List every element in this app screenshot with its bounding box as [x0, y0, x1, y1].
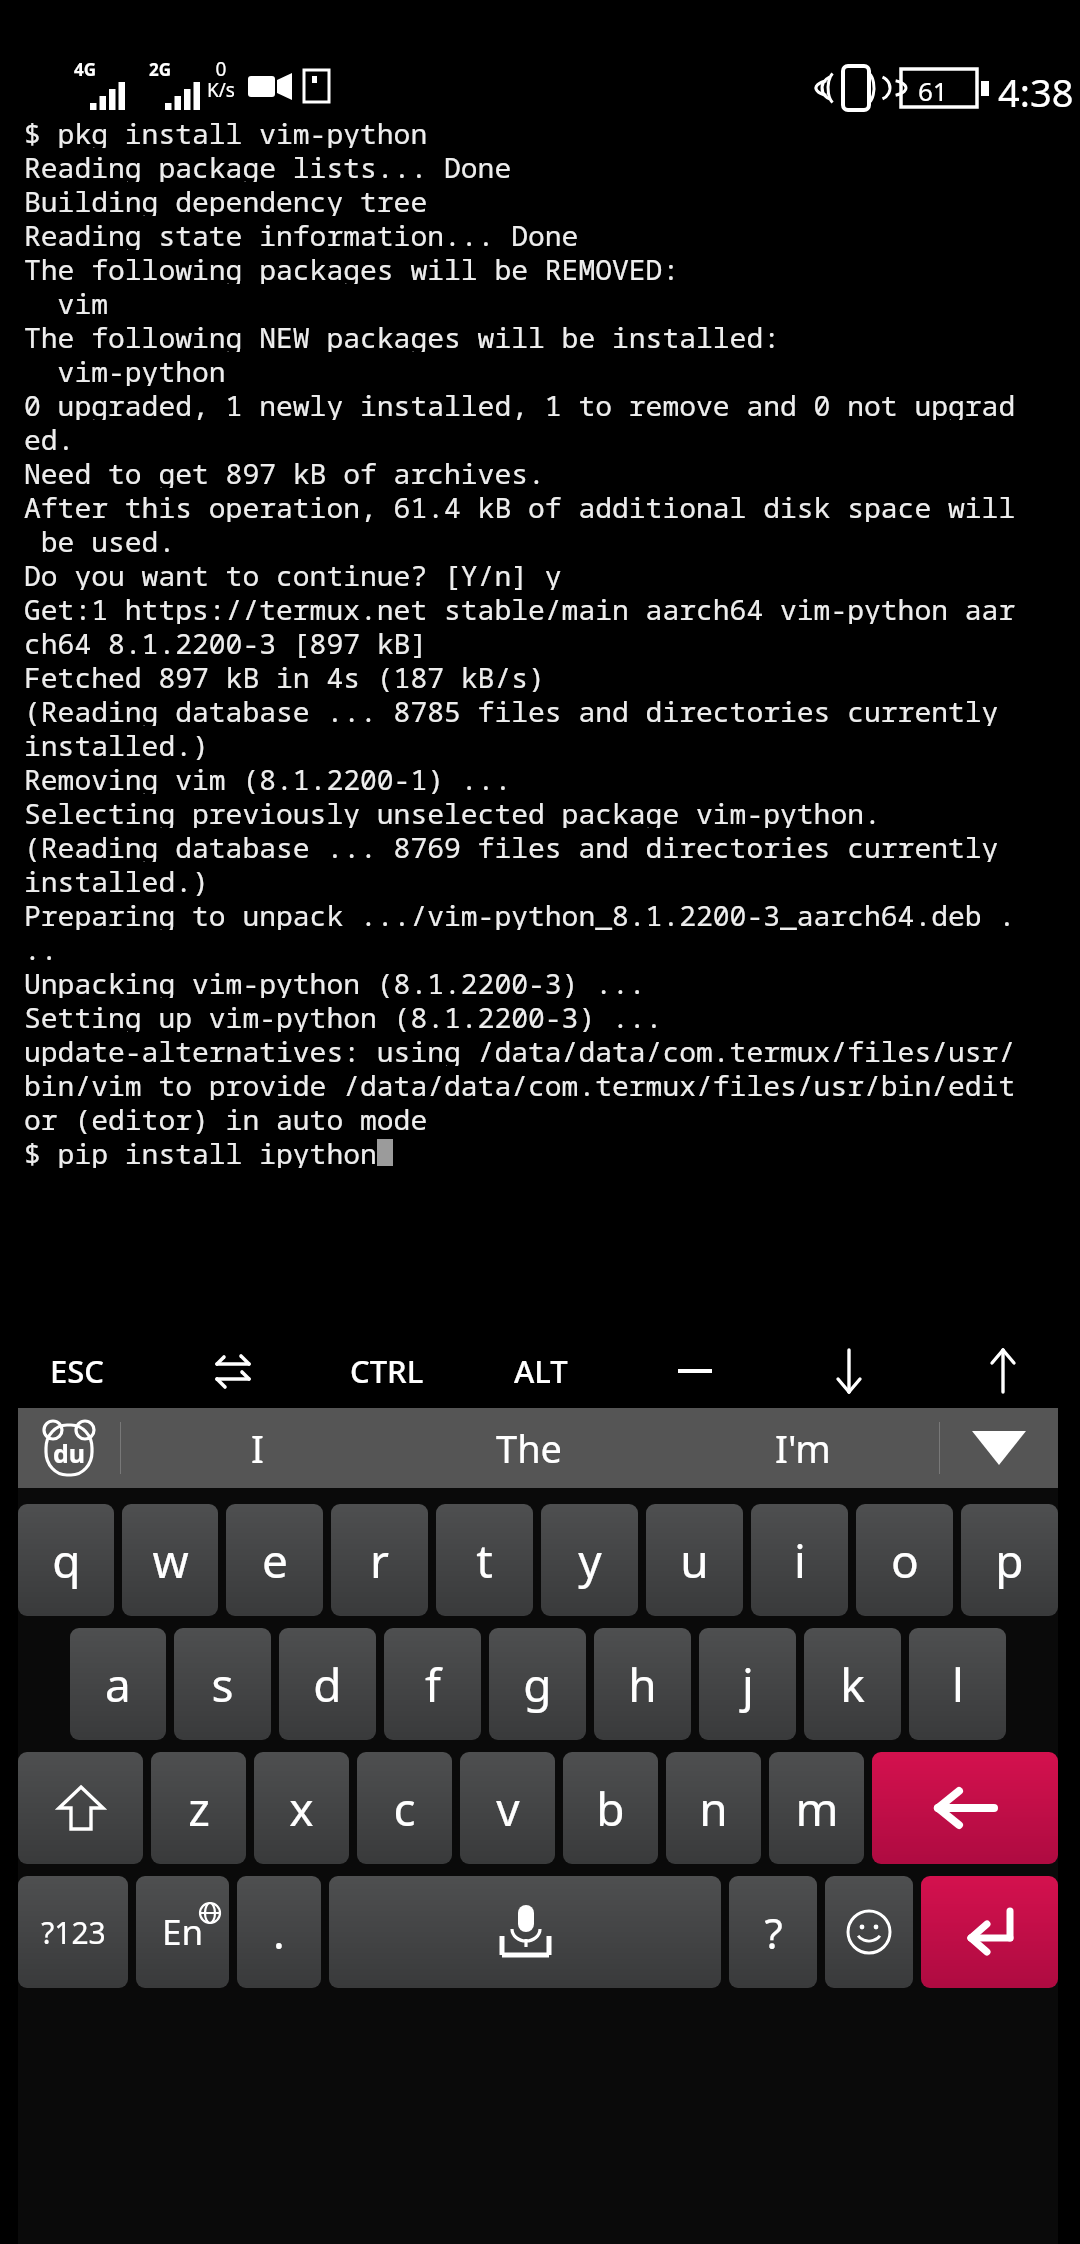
staticText: En	[162, 1908, 204, 1956]
button[interactable]: p	[961, 1504, 1058, 1616]
staticText: 61	[918, 73, 948, 108]
staticText: Selecting previously unselected package …	[24, 794, 881, 828]
staticText: m	[795, 1777, 839, 1840]
staticText: n	[699, 1777, 728, 1840]
staticText: ch64 8.1.2200-3 [897 kB]	[24, 624, 428, 658]
staticText: (Reading database ... 8785 files and dir…	[24, 692, 999, 726]
staticText: h	[628, 1653, 657, 1716]
button[interactable]: a	[70, 1628, 166, 1740]
button[interactable]: l	[909, 1628, 1006, 1740]
staticText: 2G	[149, 58, 172, 81]
staticText: Unpacking vim-python (8.1.2200-3) ...	[24, 964, 646, 998]
staticText: g	[523, 1653, 552, 1716]
staticText: $ pip install ipython	[24, 1134, 377, 1168]
staticText: d	[313, 1653, 342, 1716]
staticText: installed.)	[24, 726, 209, 760]
staticText: The following packages will be REMOVED:	[24, 250, 680, 284]
staticText: Preparing to unpack .../vim-python_8.1.2…	[24, 896, 1016, 930]
staticText: 0 upgraded, 1 newly installed, 1 to remo…	[24, 386, 1016, 420]
staticText: 4:38	[998, 66, 1074, 118]
staticText: f	[425, 1653, 441, 1716]
button[interactable]: b	[563, 1752, 658, 1864]
button[interactable]: r	[331, 1504, 428, 1616]
button[interactable]: j	[699, 1628, 796, 1740]
staticText: 0 K/s	[207, 56, 235, 102]
staticText: u	[680, 1529, 709, 1592]
button[interactable]: .	[237, 1876, 321, 1988]
staticText: ?123	[41, 1912, 106, 1953]
staticText: Do you want to continue? [Y/n] y	[24, 556, 562, 590]
button[interactable]: Arrow down	[772, 1334, 926, 1408]
button[interactable]: u	[646, 1504, 743, 1616]
button[interactable]: Minus	[618, 1334, 772, 1408]
button[interactable]: c	[357, 1752, 452, 1864]
button[interactable]: q	[18, 1504, 114, 1616]
staticText: vim	[24, 284, 109, 318]
button[interactable]: Backspace	[872, 1752, 1058, 1864]
button[interactable]: I'm	[666, 1408, 939, 1488]
staticText: Fetched 897 kB in 4s (187 kB/s)	[24, 658, 545, 692]
staticText: bin/vim to provide /data/data/com.termux…	[24, 1066, 1016, 1100]
staticText: ..	[24, 930, 58, 964]
button[interactable]: ?	[729, 1876, 817, 1988]
staticText: a	[105, 1653, 131, 1716]
staticText: .	[273, 1902, 285, 1962]
button[interactable]: Emoji	[825, 1876, 913, 1988]
button[interactable]: ESC	[0, 1334, 155, 1408]
button[interactable]: y	[541, 1504, 638, 1616]
staticText: y	[578, 1529, 602, 1592]
button[interactable]: Shift	[18, 1752, 143, 1864]
button[interactable]: s	[174, 1628, 271, 1740]
button[interactable]: ?123	[18, 1876, 128, 1988]
button[interactable]: Arrow up	[926, 1334, 1080, 1408]
button[interactable]: Change language	[136, 1876, 229, 1988]
button[interactable]: v	[460, 1752, 555, 1864]
staticText: j	[742, 1653, 754, 1716]
staticText: Reading package lists... Done	[24, 148, 512, 182]
staticText: ed.	[24, 420, 75, 454]
button[interactable]: f	[384, 1628, 481, 1740]
button[interactable]: w	[122, 1504, 218, 1616]
button[interactable]: m	[769, 1752, 864, 1864]
staticText: l	[952, 1653, 964, 1716]
button[interactable]: o	[856, 1504, 953, 1616]
staticText: p	[995, 1529, 1024, 1592]
button[interactable]: Enter	[921, 1876, 1058, 1988]
staticText: or (editor) in auto mode	[24, 1100, 428, 1134]
button[interactable]: ALT	[464, 1334, 618, 1408]
staticText: w	[152, 1529, 189, 1592]
button[interactable]: d	[279, 1628, 376, 1740]
staticText: update-alternatives: using /data/data/co…	[24, 1032, 1016, 1066]
button[interactable]: Keyboard menu	[18, 1408, 120, 1488]
button[interactable]: x	[254, 1752, 349, 1864]
button[interactable]: t	[436, 1504, 533, 1616]
button[interactable]: Tab	[155, 1334, 310, 1408]
staticText: s	[211, 1653, 234, 1716]
button[interactable]: g	[489, 1628, 586, 1740]
button[interactable]: i	[751, 1504, 848, 1616]
button[interactable]: The	[393, 1408, 666, 1488]
button[interactable]: e	[226, 1504, 323, 1616]
button[interactable]: k	[804, 1628, 901, 1740]
staticText: v	[496, 1777, 520, 1840]
staticText: b	[596, 1777, 625, 1840]
button[interactable]: Hide keyboard	[940, 1408, 1058, 1488]
staticText: Get:1 https://termux.net stable/main aar…	[24, 590, 1016, 624]
staticText: The following NEW packages will be insta…	[24, 318, 781, 352]
staticText: The	[496, 1422, 563, 1474]
staticText: du	[53, 1436, 86, 1470]
button[interactable]: n	[666, 1752, 761, 1864]
staticText: i	[794, 1529, 806, 1592]
button[interactable]: I	[121, 1408, 393, 1488]
staticText: z	[188, 1777, 210, 1840]
staticText: e	[262, 1529, 288, 1592]
staticText: ALT	[514, 1350, 568, 1392]
staticText: (Reading database ... 8769 files and dir…	[24, 828, 999, 862]
staticText: CTRL	[350, 1350, 424, 1392]
button[interactable]: CTRL	[310, 1334, 464, 1408]
staticText: vim-python	[24, 352, 226, 386]
button[interactable]: Space, voice input	[329, 1876, 721, 1988]
button[interactable]: h	[594, 1628, 691, 1740]
staticText: I	[251, 1422, 264, 1474]
button[interactable]: z	[151, 1752, 246, 1864]
